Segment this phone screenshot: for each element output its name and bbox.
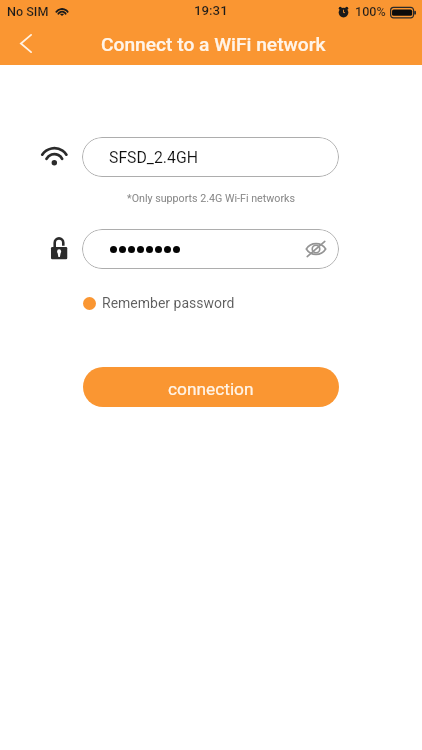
staticText: connection bbox=[168, 379, 254, 399]
staticText: 100% bbox=[355, 4, 386, 19]
button[interactable]: Show password bbox=[82, 229, 339, 269]
staticText: Remember password bbox=[102, 295, 235, 311]
button[interactable]: Back bbox=[9, 26, 43, 60]
staticText: SFSD_2.4GH bbox=[109, 148, 198, 167]
button[interactable]: connection bbox=[83, 367, 339, 407]
staticText: Connect to a WiFi network bbox=[101, 33, 326, 56]
staticText: No SIM bbox=[7, 4, 49, 19]
button[interactable]: Remember password bbox=[83, 294, 235, 312]
button[interactable]: Show password bbox=[303, 236, 329, 262]
staticText: 19:31 bbox=[194, 3, 228, 19]
staticText: *Only supports 2.4G Wi-Fi networks bbox=[0, 192, 422, 205]
button[interactable]: SFSD_2.4GH bbox=[82, 137, 339, 177]
